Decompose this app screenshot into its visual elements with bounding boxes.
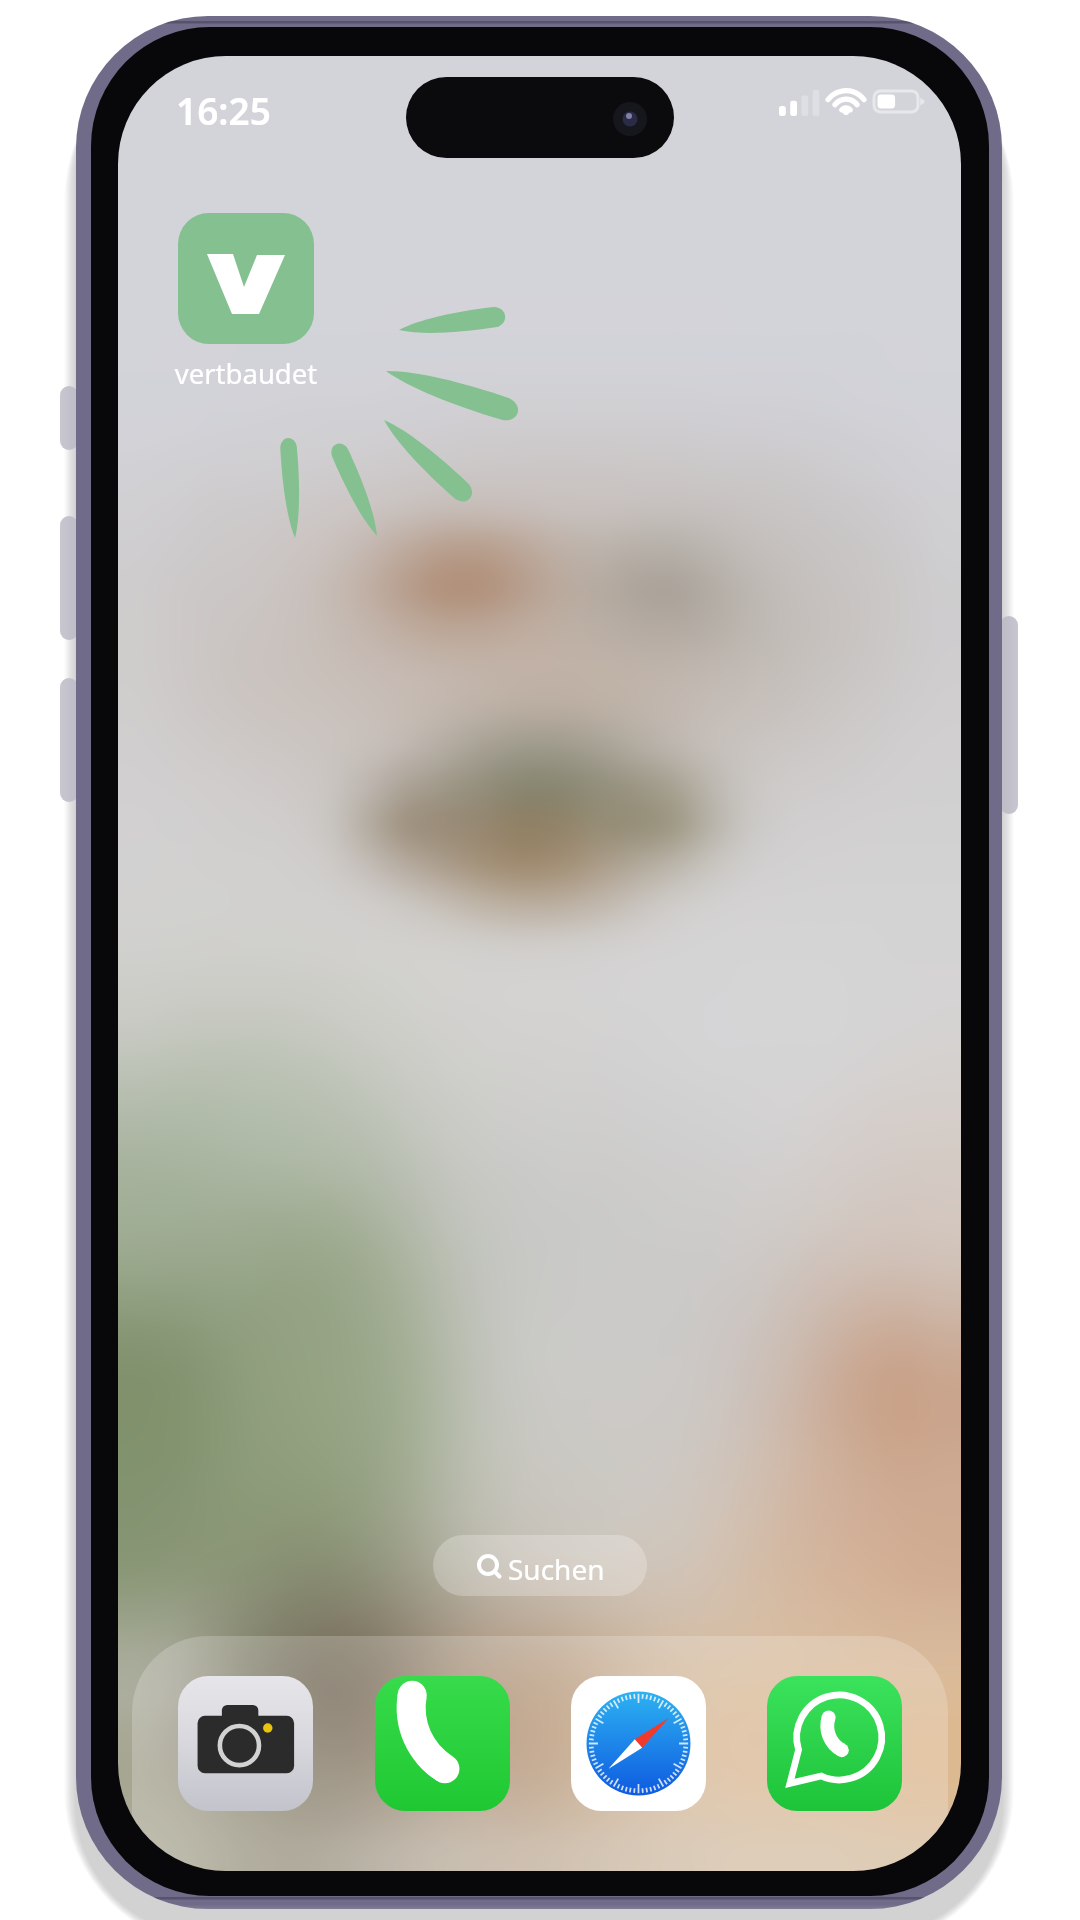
staticText: vertbaudet <box>150 355 342 392</box>
button[interactable]: Suchen <box>433 1535 647 1596</box>
staticText: 16:25 <box>176 85 271 135</box>
button[interactable]: Safari <box>571 1676 706 1811</box>
staticText: Suchen <box>508 1550 605 1588</box>
button[interactable]: Phone <box>375 1676 510 1811</box>
button[interactable]: vertbaudet app <box>178 213 314 388</box>
button[interactable]: WhatsApp <box>767 1676 902 1811</box>
button[interactable]: Camera <box>178 1676 313 1811</box>
